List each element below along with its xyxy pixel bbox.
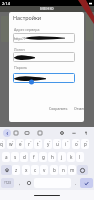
button[interactable]: Back: [3, 129, 11, 137]
staticText: МЕНЮ: [40, 6, 54, 12]
staticText: 1: [2, 139, 4, 142]
staticText: z: [15, 167, 18, 173]
staticText: n: [62, 167, 65, 173]
button[interactable]: m: [68, 165, 76, 175]
staticText: c: [34, 167, 37, 173]
button[interactable]: Backspace: [77, 165, 88, 175]
button[interactable]: Hide keyboard: [70, 129, 77, 136]
button[interactable]: s: [11, 152, 19, 162]
staticText: q: [0, 141, 3, 147]
button[interactable]: f: [30, 152, 38, 162]
button[interactable]: q: [0, 139, 5, 149]
staticText: 2:14: [2, 1, 10, 6]
staticText: x: [25, 167, 28, 173]
button[interactable]: v: [40, 165, 48, 175]
button[interactable]: w: [7, 139, 15, 149]
staticText: Настройки: [13, 14, 42, 21]
button[interactable]: GIF: [23, 129, 30, 136]
staticText: p: [84, 141, 87, 147]
button[interactable]: Сохранить: [47, 104, 70, 113]
button[interactable]: n: [59, 165, 67, 175]
button[interactable]: http://1: [13, 33, 75, 43]
button[interactable]: c: [31, 165, 39, 175]
button[interactable]: Comma: [16, 178, 24, 188]
button[interactable]: ?123: [1, 178, 14, 188]
button[interactable]: k: [67, 152, 75, 162]
button[interactable]: Emoji: [25, 178, 33, 188]
staticText: s: [14, 154, 17, 160]
button[interactable]: Settings: [58, 129, 65, 136]
staticText: v: [43, 167, 46, 173]
staticText: e: [19, 141, 22, 147]
staticText: 8: [67, 139, 69, 142]
staticText: j: [61, 154, 63, 160]
staticText: b: [53, 167, 56, 173]
staticText: 9: [77, 139, 79, 142]
button[interactable]: Clipboard: [12, 129, 19, 136]
staticText: 0: [86, 139, 88, 142]
staticText: .: [75, 180, 77, 186]
staticText: 7: [58, 139, 60, 142]
button[interactable]: j: [58, 152, 66, 162]
staticText: Отменить: [74, 106, 84, 111]
button[interactable]: Shift: [1, 165, 12, 175]
button[interactable]: d: [20, 152, 28, 162]
button[interactable]: Voice input: [82, 129, 89, 136]
button[interactable]: [13, 73, 75, 83]
staticText: r: [28, 141, 30, 147]
staticText: http://1: [14, 36, 26, 40]
staticText: d: [23, 154, 26, 160]
button[interactable]: x: [22, 165, 30, 175]
button[interactable]: Enter: [80, 178, 93, 188]
button[interactable]: t: [34, 139, 42, 149]
staticText: ?123: [4, 181, 11, 185]
staticText: ,: [19, 180, 21, 186]
staticText: 2: [12, 139, 14, 142]
staticText: Адрес сервера: [14, 27, 40, 32]
button[interactable]: b: [50, 165, 58, 175]
button[interactable]: [13, 52, 75, 62]
staticText: h: [51, 154, 54, 160]
staticText: 3: [21, 139, 23, 142]
staticText: 4: [30, 139, 32, 142]
button[interactable]: u: [53, 139, 61, 149]
staticText: l: [79, 154, 81, 160]
staticText: u: [56, 141, 59, 147]
button[interactable]: o: [72, 139, 80, 149]
button[interactable]: y: [44, 139, 52, 149]
staticText: 5: [39, 139, 41, 142]
button[interactable]: i: [62, 139, 70, 149]
staticText: Логин: [14, 47, 25, 52]
button[interactable]: l: [76, 152, 84, 162]
staticText: k: [70, 154, 73, 160]
staticText: w: [9, 141, 13, 147]
staticText: 6: [49, 139, 51, 142]
button[interactable]: Stickers: [36, 129, 43, 136]
staticText: Сохранить: [49, 106, 68, 111]
staticText: Пароль: [14, 65, 28, 70]
staticText: o: [75, 141, 78, 147]
staticText: i: [65, 141, 67, 147]
staticText: a: [5, 154, 8, 160]
staticText: m: [70, 167, 75, 173]
staticText: y: [47, 141, 50, 147]
button[interactable]: Period: [72, 178, 79, 188]
staticText: f: [33, 154, 35, 160]
button[interactable]: r: [25, 139, 33, 149]
staticText: t: [37, 141, 39, 147]
button[interactable]: e: [16, 139, 24, 149]
button[interactable]: a: [2, 152, 10, 162]
button[interactable]: h: [48, 152, 56, 162]
staticText: g: [42, 154, 45, 160]
button[interactable]: g: [39, 152, 47, 162]
button[interactable]: z: [12, 165, 20, 175]
button[interactable]: Отменить: [72, 104, 84, 113]
button[interactable]: p: [81, 139, 89, 149]
